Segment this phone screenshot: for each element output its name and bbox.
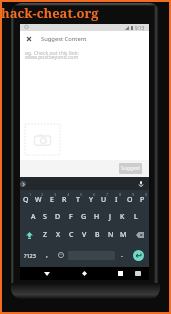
button[interactable]: F bbox=[64, 208, 77, 226]
button[interactable]: P bbox=[136, 190, 149, 208]
button[interactable]: V bbox=[78, 226, 91, 244]
button[interactable]: B bbox=[91, 226, 104, 244]
staticText: Q bbox=[23, 195, 29, 205]
staticText: W bbox=[35, 195, 42, 205]
staticText: 9 bbox=[132, 192, 135, 197]
button[interactable]: Add photo bbox=[25, 124, 60, 155]
staticText: X bbox=[56, 230, 61, 240]
staticText: T bbox=[76, 195, 80, 205]
staticText: . bbox=[121, 250, 123, 260]
staticText: Z bbox=[43, 230, 48, 240]
button[interactable]: Back bbox=[40, 267, 53, 280]
button[interactable]: Z bbox=[39, 226, 52, 244]
staticText: 7 bbox=[106, 192, 109, 197]
button[interactable]: , bbox=[39, 244, 54, 266]
staticText: H bbox=[94, 212, 100, 222]
staticText: L bbox=[134, 212, 138, 222]
staticText: K bbox=[120, 212, 125, 222]
staticText: F bbox=[69, 212, 73, 222]
button[interactable]: S bbox=[39, 208, 51, 226]
staticText: Y bbox=[89, 195, 93, 205]
button[interactable]: Enter bbox=[128, 244, 149, 266]
staticText: N bbox=[108, 230, 114, 240]
button[interactable]: I bbox=[110, 190, 123, 208]
button[interactable]: Recents bbox=[114, 267, 127, 280]
button[interactable]: Q bbox=[20, 190, 32, 208]
button[interactable]: W bbox=[32, 190, 45, 208]
staticText: eg. Check out this link: bbox=[25, 50, 79, 57]
button[interactable]: Y bbox=[84, 190, 97, 208]
staticText: D bbox=[55, 212, 61, 222]
staticText: U bbox=[101, 195, 107, 205]
staticText: 8 bbox=[119, 192, 122, 197]
button[interactable]: M bbox=[117, 226, 130, 244]
staticText: B bbox=[95, 230, 100, 240]
staticText: 2 bbox=[41, 192, 44, 197]
staticText: 9:13 bbox=[135, 25, 145, 31]
staticText: 1 bbox=[29, 192, 32, 197]
staticText: J bbox=[109, 212, 111, 222]
staticText: Suggest bbox=[121, 165, 141, 172]
staticText: 4 bbox=[67, 192, 70, 197]
button[interactable]: Close bbox=[23, 33, 35, 45]
button[interactable]: Suggest bbox=[119, 163, 142, 174]
staticText: E bbox=[50, 195, 54, 205]
staticText: 0 bbox=[145, 192, 148, 197]
button[interactable]: X bbox=[52, 226, 65, 244]
staticText: A bbox=[31, 212, 36, 222]
staticText: 5 bbox=[80, 192, 83, 197]
staticText: Suggest Content bbox=[41, 35, 87, 43]
button[interactable]: T bbox=[71, 190, 84, 208]
button[interactable]: J bbox=[103, 208, 116, 226]
staticText: www.postbeyond.com bbox=[25, 54, 79, 61]
button[interactable]: L bbox=[129, 208, 142, 226]
staticText: M bbox=[120, 230, 127, 240]
staticText: P bbox=[140, 195, 145, 205]
button[interactable]: R bbox=[58, 190, 71, 208]
button[interactable]: Emoji bbox=[54, 244, 68, 266]
button[interactable]: O bbox=[123, 190, 136, 208]
button[interactable]: ?123 bbox=[20, 244, 39, 266]
staticText: 3 bbox=[54, 192, 57, 197]
button[interactable]: N bbox=[104, 226, 117, 244]
staticText: ?123 bbox=[24, 252, 36, 259]
staticText: I bbox=[115, 195, 118, 205]
staticText: , bbox=[46, 250, 48, 260]
button[interactable]: U bbox=[97, 190, 110, 208]
staticText: R bbox=[62, 195, 67, 205]
button[interactable]: C bbox=[65, 226, 78, 244]
button[interactable]: Switch keyboard bbox=[131, 267, 144, 280]
staticText: O bbox=[127, 195, 133, 205]
button[interactable]: Expand suggestions bbox=[20, 181, 26, 187]
button[interactable]: Shift bbox=[20, 226, 39, 244]
button[interactable]: H bbox=[90, 208, 103, 226]
staticText: 6 bbox=[93, 192, 96, 197]
staticText: V bbox=[82, 230, 87, 240]
staticText: hack-cheat.org bbox=[1, 4, 99, 22]
button[interactable]: Backspace bbox=[130, 226, 149, 244]
button[interactable]: E bbox=[45, 190, 58, 208]
button[interactable]: A bbox=[27, 208, 39, 226]
button[interactable]: G bbox=[77, 208, 90, 226]
staticText: S bbox=[43, 212, 47, 222]
button[interactable]: Home bbox=[78, 267, 91, 280]
staticText: C bbox=[69, 230, 74, 240]
button[interactable]: D bbox=[51, 208, 64, 226]
button[interactable]: . bbox=[115, 244, 128, 266]
staticText: G bbox=[81, 212, 87, 222]
button[interactable]: Voice input bbox=[137, 180, 145, 188]
button[interactable]: K bbox=[116, 208, 129, 226]
